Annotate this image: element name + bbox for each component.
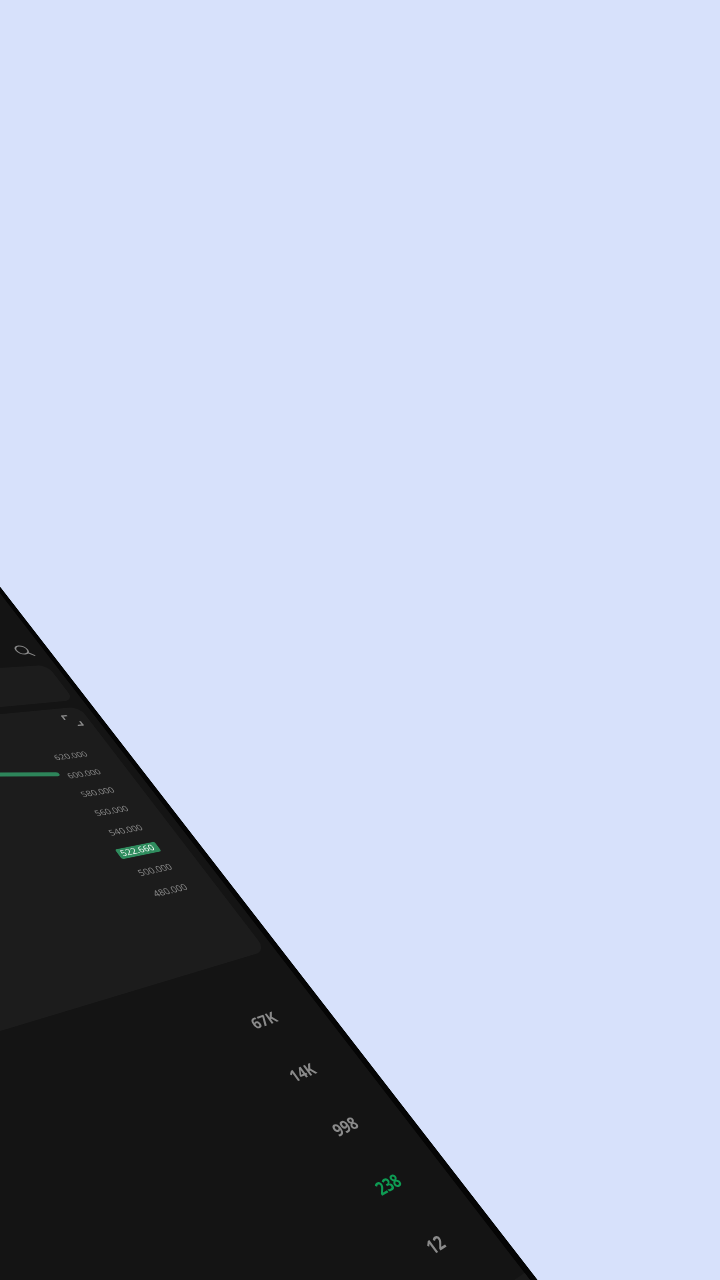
staticText: 12 xyxy=(419,1227,452,1259)
button[interactable]: Search xyxy=(10,644,38,658)
staticText: 67K xyxy=(245,1005,284,1032)
staticText: 620.000 xyxy=(51,749,92,762)
staticText: 998 xyxy=(326,1110,363,1140)
staticText: 540.000 xyxy=(106,822,147,838)
staticText: 14K xyxy=(283,1056,322,1085)
staticText: 560.000 xyxy=(92,803,133,819)
staticText: 500.000 xyxy=(135,861,177,879)
button[interactable]: Portfolio xyxy=(0,1091,376,1280)
staticText: 600.000 xyxy=(65,767,105,781)
button[interactable]: Stock Alert xyxy=(0,1146,420,1280)
button[interactable]: Today xyxy=(0,665,74,762)
staticText: 580.000 xyxy=(78,785,119,800)
button[interactable]: Summary xyxy=(0,988,295,1280)
staticText: 480.000 xyxy=(150,881,192,900)
button[interactable]: Expand chart xyxy=(59,713,85,728)
staticText: 522.660 xyxy=(117,842,159,859)
button[interactable]: Reports xyxy=(0,1205,466,1280)
staticText: 238 xyxy=(369,1167,406,1200)
button[interactable]: Me xyxy=(312,1273,575,1280)
button[interactable]: Orders xyxy=(0,1038,334,1280)
